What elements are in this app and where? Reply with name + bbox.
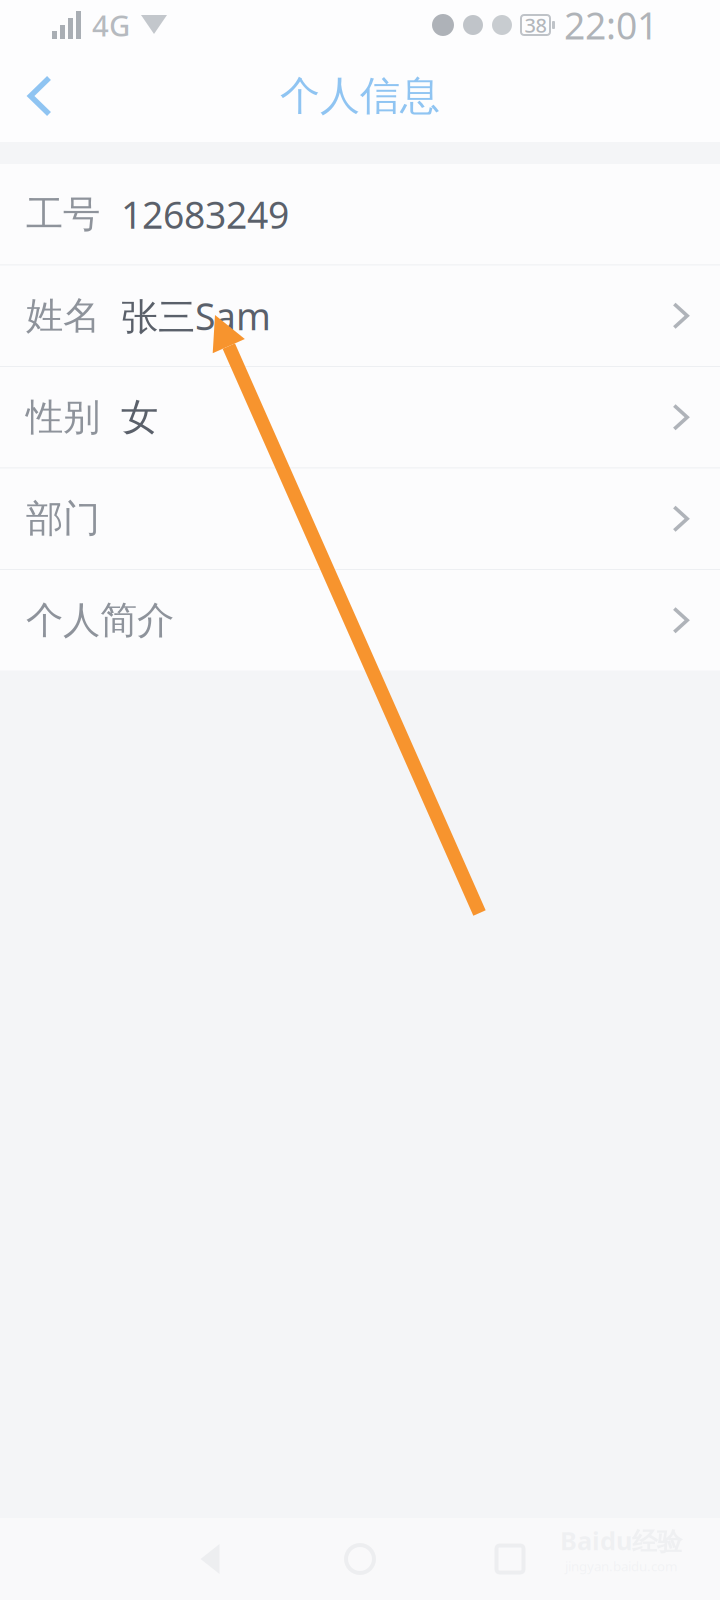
staticText: 张三Sam (121, 291, 271, 341)
staticText: 女 (121, 394, 158, 440)
button[interactable]: 性别 (0, 367, 720, 467)
staticText: 个人简介 (26, 597, 174, 643)
staticText: 工号 (26, 191, 100, 237)
staticText: 4G (92, 5, 130, 44)
staticText: 12683249 (121, 189, 289, 239)
button[interactable]: 工号 (0, 164, 720, 264)
staticText: 部门 (26, 496, 100, 542)
staticText: 22:01 (564, 0, 658, 50)
staticText: 姓名 (26, 293, 100, 339)
staticText: 38 (524, 12, 546, 38)
staticText: 个人信息 (280, 71, 440, 120)
button[interactable]: Back (0, 50, 80, 142)
button[interactable]: 个人简介 (0, 570, 720, 670)
staticText: Baidu经验 (560, 1523, 682, 1557)
staticText: 性别 (26, 394, 100, 440)
button[interactable]: 部门 (0, 468, 720, 569)
button[interactable]: 姓名 (0, 265, 720, 366)
